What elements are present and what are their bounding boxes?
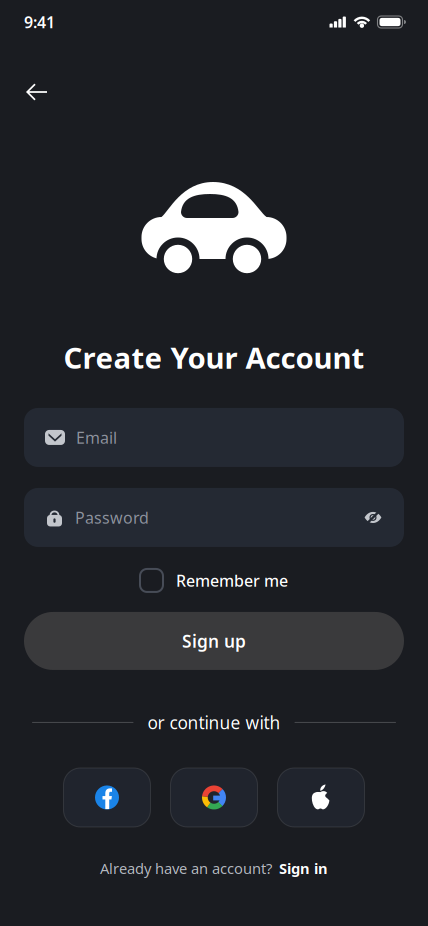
- button[interactable]: Continue with Google: [170, 768, 257, 827]
- button[interactable]: Back: [12, 68, 62, 116]
- staticText: Sign in: [279, 858, 328, 878]
- staticText: Password: [75, 507, 149, 528]
- button[interactable]: Continue with Facebook: [63, 768, 150, 827]
- staticText: 9:41: [24, 11, 55, 33]
- button[interactable]: Sign up: [24, 612, 404, 670]
- staticText: Create Your Account: [63, 338, 364, 377]
- button[interactable]: Remember me: [140, 563, 288, 598]
- button[interactable]: Already have an account?: [100, 852, 328, 884]
- button[interactable]: Password: [24, 488, 404, 547]
- staticText: or continue with: [147, 711, 280, 734]
- staticText: Already have an account?: [100, 858, 272, 878]
- button[interactable]: Email: [24, 408, 404, 467]
- button[interactable]: Continue with Apple: [277, 768, 364, 827]
- staticText: Remember me: [176, 570, 288, 591]
- staticText: Email: [76, 427, 117, 448]
- staticText: Sign up: [182, 629, 246, 652]
